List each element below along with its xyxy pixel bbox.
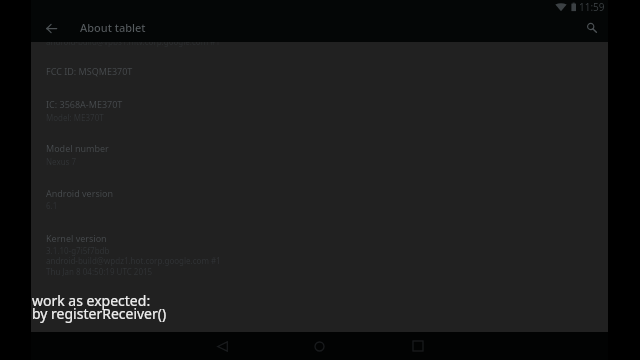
staticText: Kernel version bbox=[46, 232, 107, 244]
button[interactable]: Navigate up bbox=[37, 14, 66, 43]
staticText: Model number bbox=[46, 142, 109, 154]
staticText: 3.1.10-g7i5f7bdb android-build@wpdz1.hot… bbox=[46, 245, 221, 278]
button[interactable]: Recent apps bbox=[400, 332, 436, 360]
staticText: IC: 3568A-ME370T bbox=[46, 98, 123, 110]
button[interactable]: Back bbox=[204, 332, 240, 360]
staticText: work as expected: by registerReceiver() bbox=[32, 291, 167, 323]
staticText: Model: ME370T bbox=[46, 112, 104, 123]
button[interactable]: Search bbox=[577, 13, 606, 42]
staticText: About tablet bbox=[80, 20, 146, 35]
staticText: android-build@vpbs1.mtv.corp.google.com … bbox=[46, 36, 220, 47]
button[interactable]: About tablet bbox=[80, 20, 146, 35]
staticText: 11:59 bbox=[579, 0, 605, 14]
button[interactable] bbox=[31, 59, 608, 85]
button[interactable]: Home bbox=[301, 332, 337, 360]
staticText: 6.1 bbox=[46, 200, 58, 211]
staticText: FCC ID: MSQME370T bbox=[46, 65, 133, 77]
staticText: Nexus 7 bbox=[46, 156, 77, 167]
staticText: Android version bbox=[46, 187, 114, 199]
